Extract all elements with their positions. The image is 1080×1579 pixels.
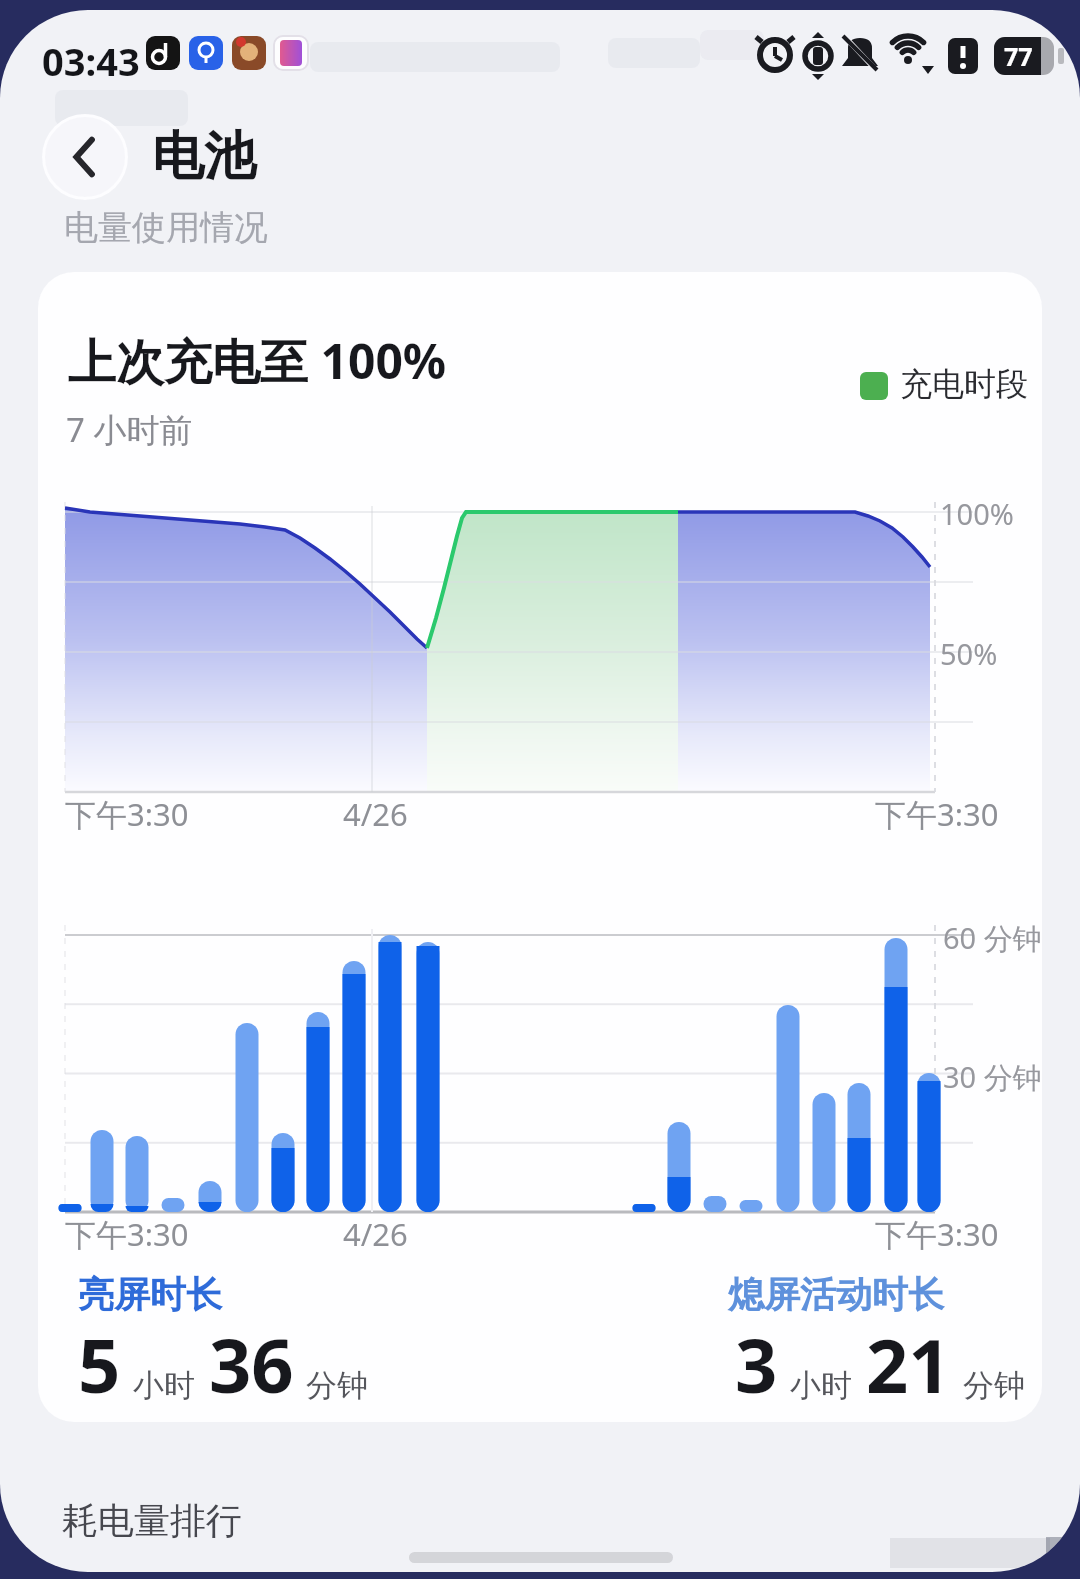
staticText: 30 分钟	[943, 1057, 1042, 1097]
staticText: 小时	[790, 1366, 852, 1405]
staticText: 7 小时前	[66, 407, 193, 452]
button[interactable]	[42, 114, 128, 200]
staticText: 5	[78, 1314, 121, 1415]
staticText: 21	[866, 1314, 951, 1415]
staticText: 亮屏时长	[78, 1272, 222, 1317]
staticText: 小时	[133, 1366, 195, 1405]
staticText: 50%	[940, 634, 998, 673]
staticText: 60 分钟	[943, 918, 1042, 958]
staticText: 下午3:30	[65, 793, 189, 835]
staticText: 熄屏活动时长	[728, 1272, 944, 1317]
staticText: 3	[735, 1314, 778, 1415]
staticText: 电池	[152, 124, 256, 190]
staticText: 03:43	[42, 35, 140, 87]
staticText: 充电时段	[900, 364, 1028, 404]
staticText: 电量使用情况	[64, 206, 268, 249]
staticText: 4/26	[343, 1213, 408, 1255]
staticText: 77	[1004, 39, 1033, 73]
staticText: 下午3:30	[875, 793, 999, 835]
staticText: 耗电量排行	[62, 1498, 242, 1543]
staticText: 下午3:30	[875, 1213, 999, 1255]
staticText: 4/26	[343, 793, 408, 835]
staticText: 上次充电至 100%	[68, 328, 447, 394]
staticText: 36	[209, 1314, 294, 1415]
staticText: 分钟	[963, 1366, 1025, 1405]
staticText: 100%	[940, 494, 1014, 533]
staticText: 下午3:30	[65, 1213, 189, 1255]
staticText: 分钟	[306, 1366, 368, 1405]
